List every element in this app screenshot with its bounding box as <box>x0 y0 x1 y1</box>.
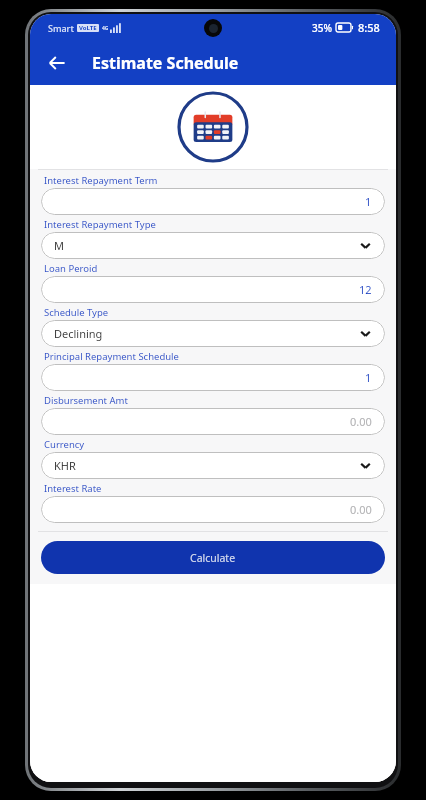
button[interactable]: 0.00 <box>41 496 385 523</box>
staticText: Smart <box>48 22 74 34</box>
button[interactable]: 1 <box>41 364 385 391</box>
staticText: Interest Repayment Type <box>44 218 156 231</box>
button[interactable]: Back <box>38 44 76 82</box>
staticText: Interest Repayment Term <box>44 174 158 187</box>
staticText: Principal Repayment Schedule <box>44 350 179 363</box>
staticText: 35% <box>312 21 332 35</box>
staticText: KHR <box>54 458 76 473</box>
button[interactable]: M <box>41 232 385 259</box>
staticText: 8:58 <box>358 20 380 35</box>
button[interactable]: 12 <box>41 276 385 303</box>
button[interactable]: KHR <box>41 452 385 479</box>
staticText: Calculate <box>190 551 236 565</box>
staticText: Estimate Schedule <box>92 52 239 74</box>
staticText: Interest Rate <box>44 482 102 495</box>
staticText: 0.00 <box>350 502 372 517</box>
staticText: VoLTE <box>79 24 97 32</box>
staticText: M <box>54 238 64 253</box>
button[interactable]: Declining <box>41 320 385 347</box>
staticText: 12 <box>359 282 372 297</box>
staticText: 0.00 <box>350 414 372 429</box>
staticText: Currency <box>44 438 85 451</box>
staticText: 4G <box>102 25 109 32</box>
staticText: Disbursement Amt <box>44 394 128 407</box>
staticText: 1 <box>365 370 372 385</box>
staticText: 1 <box>365 194 372 209</box>
button[interactable]: 0.00 <box>41 408 385 435</box>
button[interactable]: Calculate <box>41 541 385 574</box>
staticText: Loan Peroid <box>44 262 98 275</box>
button[interactable]: 1 <box>41 188 385 215</box>
staticText: Schedule Type <box>44 306 109 319</box>
staticText: Declining <box>54 326 103 341</box>
